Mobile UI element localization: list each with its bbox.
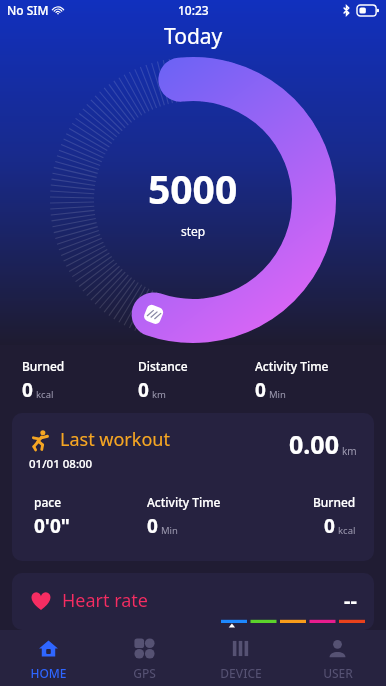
staticText: 0.00 [289, 427, 339, 461]
staticText: 0 [324, 513, 335, 539]
button[interactable]: Last workout [12, 413, 374, 561]
staticText: Min [161, 524, 178, 537]
staticText: 0 [255, 377, 266, 403]
staticText: DEVICE [220, 665, 262, 681]
button[interactable]: USER [289, 630, 386, 686]
staticText: 0 [147, 513, 158, 539]
button[interactable]: GPS [96, 630, 192, 686]
staticText: Activity Time [147, 494, 221, 510]
button[interactable]: DEVICE [192, 630, 289, 686]
staticText: HOME [30, 665, 67, 681]
staticText: 0 [138, 377, 149, 403]
staticText: 10:23 [178, 2, 209, 18]
staticText: Distance [138, 358, 188, 374]
staticText: pace [34, 494, 62, 510]
staticText: 0'0" [34, 513, 70, 539]
staticText: km [152, 388, 166, 401]
staticText: km [342, 444, 357, 458]
staticText: kcal [36, 388, 54, 401]
staticText: -- [344, 587, 357, 614]
staticText: Last workout [60, 427, 170, 452]
staticText: Today [164, 22, 223, 51]
staticText: Burned [22, 358, 65, 374]
staticText: No SIM [7, 2, 49, 18]
staticText: step [181, 223, 206, 239]
staticText: 5000 [148, 162, 238, 215]
staticText: Burned [313, 494, 356, 510]
button[interactable]: HOME [0, 630, 96, 686]
staticText: Min [269, 388, 286, 401]
staticText: USER [323, 665, 353, 681]
staticText: Activity Time [255, 358, 329, 374]
button[interactable]: Heart rate [12, 573, 374, 630]
staticText: Heart rate [62, 588, 149, 613]
staticText: 0 [22, 377, 33, 403]
staticText: GPS [133, 665, 156, 681]
staticText: kcal [338, 524, 356, 537]
staticText: 01/01 08:00 [29, 456, 93, 472]
